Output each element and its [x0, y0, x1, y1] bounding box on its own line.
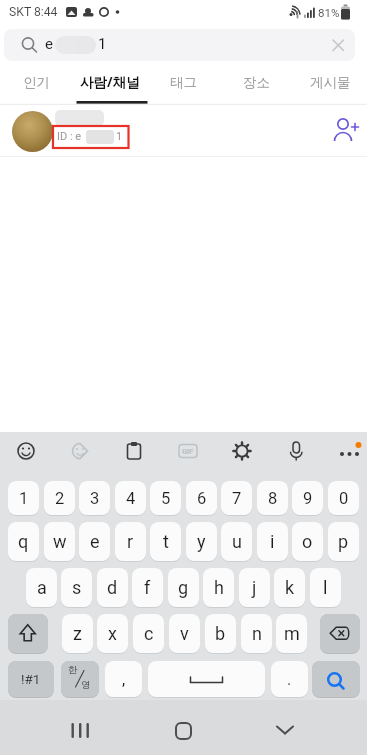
button[interactable]: u: [221, 522, 252, 561]
staticText: z: [73, 623, 82, 644]
staticText: 한: [68, 664, 78, 676]
button[interactable]: x: [97, 614, 128, 653]
button[interactable]: 4: [115, 481, 146, 515]
staticText: 6: [197, 489, 207, 508]
button[interactable]: [320, 614, 360, 653]
button[interactable]: [261, 707, 309, 749]
button[interactable]: h: [203, 568, 234, 607]
button[interactable]: !#1: [8, 661, 54, 697]
staticText: 7: [232, 489, 242, 508]
button[interactable]: s: [61, 568, 92, 607]
staticText: 81%: [318, 6, 340, 19]
button[interactable]: [171, 434, 205, 468]
button[interactable]: m: [276, 614, 307, 653]
button[interactable]: .: [271, 661, 308, 697]
button[interactable]: [327, 113, 361, 147]
button[interactable]: 한: [61, 661, 99, 697]
staticText: b: [215, 623, 226, 644]
button[interactable]: r: [115, 522, 146, 561]
button[interactable]: j: [239, 568, 270, 607]
button[interactable]: e: [79, 522, 110, 561]
button[interactable]: 0: [328, 481, 359, 515]
staticText: GIF: [182, 447, 194, 456]
staticText: 영: [81, 679, 91, 691]
button[interactable]: 7: [221, 481, 252, 515]
staticText: 사람/채널: [80, 73, 140, 91]
staticText: 1: [116, 130, 123, 143]
button[interactable]: 8: [257, 481, 288, 515]
button[interactable]: d: [97, 568, 128, 607]
staticText: SKT 8:44: [9, 5, 58, 19]
staticText: e: [45, 35, 53, 53]
staticText: o: [302, 531, 313, 552]
button[interactable]: c: [133, 614, 164, 653]
button[interactable]: y: [186, 522, 217, 561]
staticText: f: [144, 577, 151, 598]
button[interactable]: 1: [8, 481, 39, 515]
button[interactable]: t: [150, 522, 181, 561]
staticText: 장소: [243, 74, 270, 91]
staticText: v: [180, 623, 189, 644]
button[interactable]: [312, 661, 360, 697]
button[interactable]: i: [257, 522, 288, 561]
button[interactable]: b: [205, 614, 236, 653]
staticText: n: [252, 623, 262, 644]
staticText: 4: [126, 489, 136, 508]
staticText: 게시물: [310, 74, 351, 91]
staticText: ,: [122, 670, 126, 689]
button[interactable]: v: [169, 614, 200, 653]
button[interactable]: 태그: [147, 61, 220, 103]
button[interactable]: 5: [150, 481, 181, 515]
button[interactable]: [324, 31, 352, 59]
staticText: h: [214, 577, 224, 598]
button[interactable]: k: [274, 568, 305, 607]
button[interactable]: 6: [186, 481, 217, 515]
staticText: y: [197, 531, 206, 552]
button[interactable]: 장소: [220, 61, 293, 103]
button[interactable]: [117, 434, 151, 468]
staticText: 5: [161, 489, 171, 508]
button[interactable]: p: [328, 522, 359, 561]
button[interactable]: l: [310, 568, 341, 607]
button[interactable]: [279, 434, 313, 468]
staticText: i: [270, 531, 275, 552]
staticText: 2: [55, 489, 65, 508]
button[interactable]: o: [292, 522, 323, 561]
button[interactable]: n: [241, 614, 272, 653]
button[interactable]: 인기: [0, 61, 73, 103]
staticText: 8: [268, 489, 278, 508]
staticText: 태그: [170, 74, 197, 91]
staticText: w: [53, 531, 67, 552]
button[interactable]: 2: [44, 481, 75, 515]
button[interactable]: 3: [79, 481, 110, 515]
button[interactable]: 게시물: [294, 61, 367, 103]
staticText: t: [163, 531, 169, 552]
staticText: 인기: [23, 74, 50, 91]
button[interactable]: ,: [105, 661, 142, 697]
button[interactable]: f: [132, 568, 163, 607]
staticText: m: [284, 623, 300, 644]
button[interactable]: z: [62, 614, 93, 653]
button[interactable]: [9, 434, 43, 468]
button[interactable]: q: [8, 522, 39, 561]
button[interactable]: a: [26, 568, 57, 607]
button[interactable]: [0, 105, 310, 156]
staticText: 1: [19, 489, 29, 508]
button[interactable]: [333, 434, 367, 468]
button[interactable]: [225, 434, 259, 468]
staticText: j: [252, 577, 257, 598]
button[interactable]: [8, 614, 48, 653]
button[interactable]: [159, 707, 207, 749]
staticText: .: [287, 670, 292, 689]
button[interactable]: [56, 707, 104, 749]
staticText: 9: [303, 489, 313, 508]
button[interactable]: [4, 29, 355, 61]
button[interactable]: [148, 661, 265, 697]
staticText: u: [232, 531, 242, 552]
button[interactable]: g: [168, 568, 199, 607]
button[interactable]: [63, 434, 97, 468]
staticText: s: [72, 577, 82, 598]
button[interactable]: 9: [292, 481, 323, 515]
button[interactable]: 사람/채널: [73, 61, 146, 103]
button[interactable]: w: [44, 522, 75, 561]
